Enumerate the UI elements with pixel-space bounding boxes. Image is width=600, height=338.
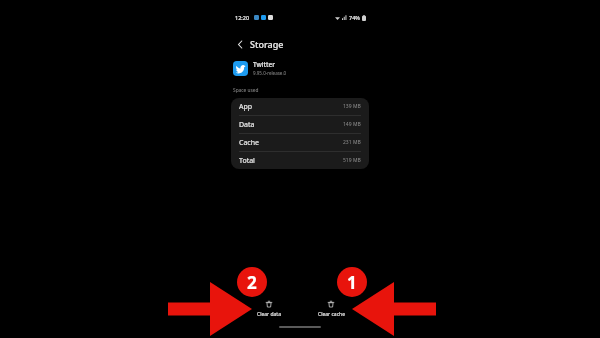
staticText: 231 MB [343,139,361,146]
staticText: App [239,102,253,112]
staticText: 1 [347,271,357,294]
button[interactable]: Back [233,37,247,51]
staticText: Data [239,120,255,130]
staticText: 519 MB [343,157,361,164]
staticText: Clear cache [318,311,345,318]
button[interactable]: App [231,98,369,115]
button[interactable]: Clear data [244,297,294,321]
staticText: Total [239,156,255,166]
staticText: 74% [349,14,360,21]
button[interactable]: Data [231,115,369,133]
staticText: Clear data [257,311,281,318]
staticText: Storage [250,38,284,50]
staticText: Cache [239,138,259,148]
staticText: 12:20 [235,14,250,21]
staticText: 9.95.0-release.0 [253,70,287,76]
button[interactable]: Cache [231,133,369,151]
button[interactable]: Twitter [227,58,373,78]
button[interactable]: Clear cache [306,297,356,321]
staticText: 2 [247,271,257,294]
staticText: Space used [233,87,259,94]
staticText: Twitter [253,60,275,69]
staticText: 139 MB [343,103,361,110]
button[interactable]: Total [231,151,369,169]
staticText: 149 MB [343,121,361,128]
